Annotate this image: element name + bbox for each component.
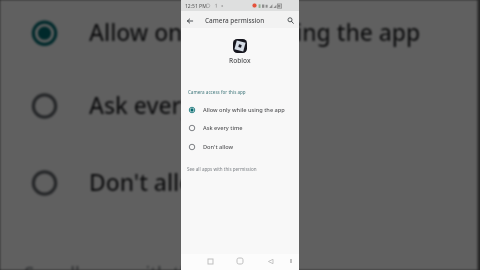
button[interactable]: Back bbox=[184, 15, 195, 26]
staticText: 12:51 PM bbox=[185, 3, 207, 10]
button[interactable]: See all apps with this permission bbox=[187, 166, 257, 172]
staticText: Allow only while using the app bbox=[203, 106, 285, 114]
staticText: Roblox bbox=[229, 56, 251, 65]
staticText: Camera access for this app bbox=[188, 89, 246, 95]
button[interactable]: Home bbox=[234, 255, 246, 267]
staticText: Ask every time bbox=[203, 124, 243, 132]
button[interactable]: Allow only while using the app bbox=[181, 100, 299, 119]
button[interactable]: Ask every time bbox=[0, 65, 477, 142]
button[interactable]: Back bbox=[264, 255, 276, 267]
button[interactable]: Recent apps bbox=[204, 255, 216, 267]
staticText: Don't allow bbox=[89, 167, 214, 199]
staticText: Allow only while using the app bbox=[89, 17, 421, 49]
staticText: Don't allow bbox=[203, 143, 234, 151]
button[interactable]: Search bbox=[285, 15, 296, 26]
staticText: Ask every time bbox=[89, 90, 251, 122]
button[interactable]: See all apps with this permission bbox=[24, 260, 308, 270]
button[interactable]: Keyboard bbox=[285, 255, 297, 267]
button[interactable]: Don't allow bbox=[181, 137, 299, 156]
button[interactable]: Don't allow bbox=[0, 142, 477, 219]
staticText: Camera permission bbox=[205, 16, 265, 25]
button[interactable]: Allow only while using the app bbox=[0, 0, 477, 70]
button[interactable]: Ask every time bbox=[181, 118, 299, 137]
